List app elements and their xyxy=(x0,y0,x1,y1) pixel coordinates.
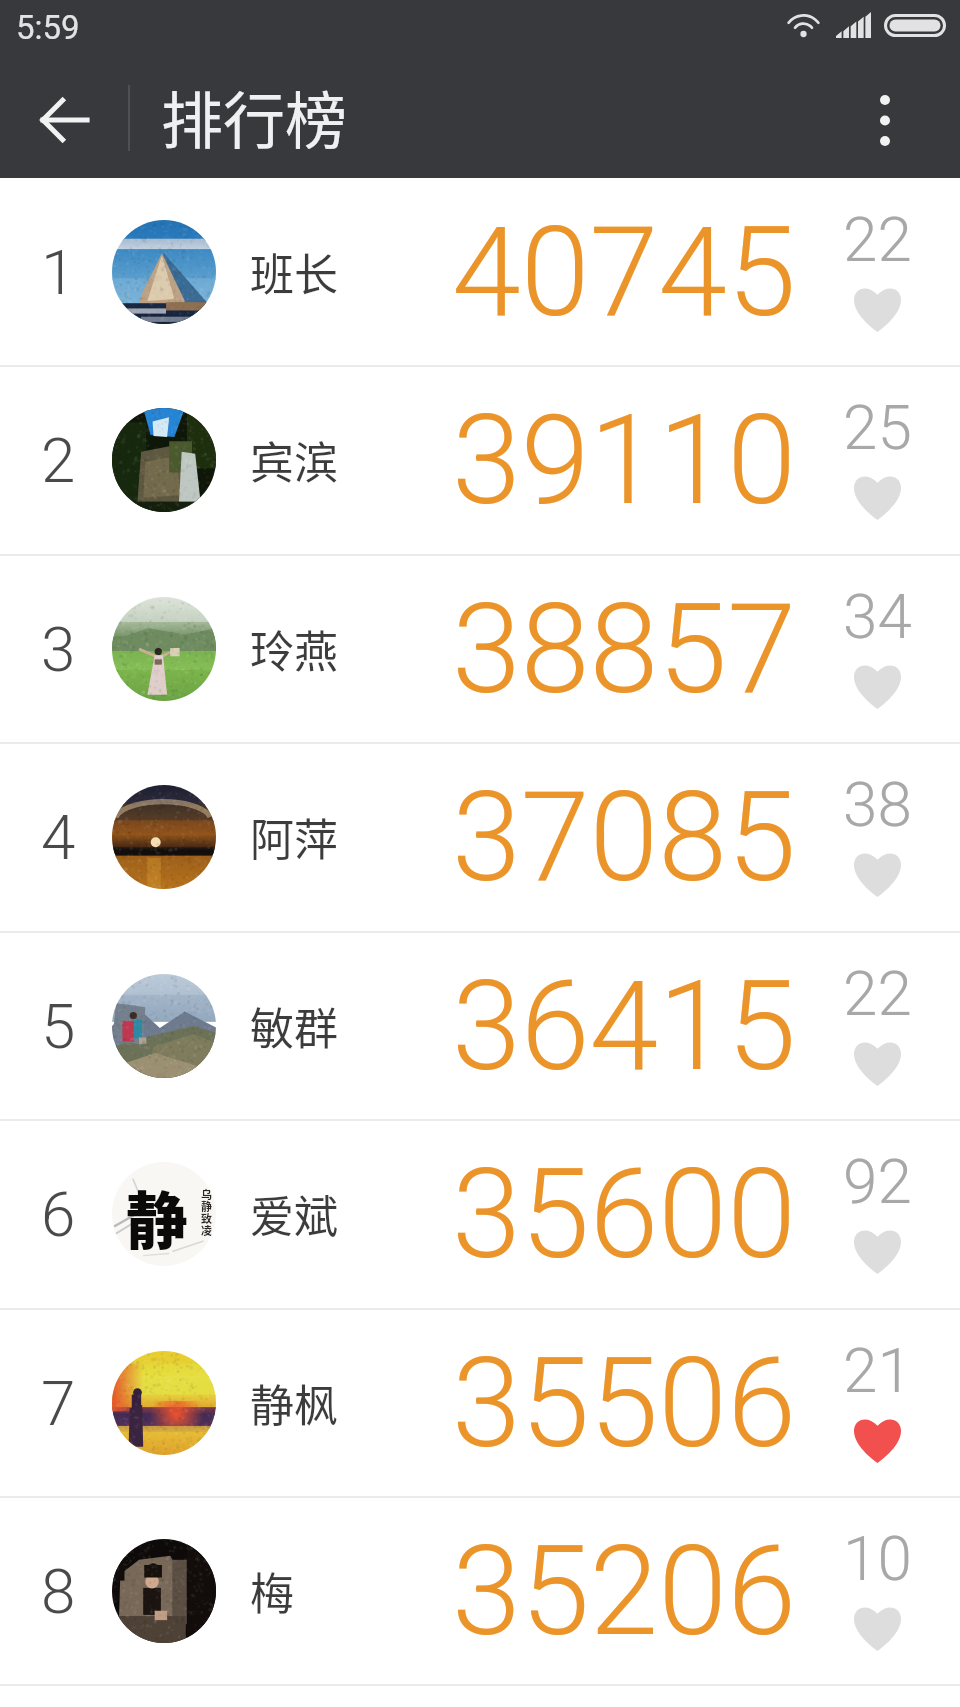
staticText: 35506 xyxy=(452,1331,796,1476)
button[interactable]: 8 xyxy=(0,1497,960,1685)
staticText: 37085 xyxy=(452,765,796,910)
staticText: 阿萍 xyxy=(250,805,338,869)
button[interactable]: Like xyxy=(815,1115,939,1303)
staticText: 2 xyxy=(41,424,76,497)
staticText: 4 xyxy=(41,801,76,874)
staticText: 5 xyxy=(41,990,76,1063)
button[interactable]: Like xyxy=(815,1492,939,1680)
button[interactable]: 5 xyxy=(0,932,960,1120)
staticText: 36415 xyxy=(452,954,796,1099)
staticText: 38857 xyxy=(452,577,796,722)
button[interactable]: Like xyxy=(815,927,939,1115)
staticText: 爱斌 xyxy=(250,1182,338,1246)
staticText: 92 xyxy=(843,1145,912,1218)
staticText: 7 xyxy=(41,1367,76,1440)
button[interactable]: Like xyxy=(815,361,939,549)
staticText: 25 xyxy=(843,391,912,464)
staticText: 梅 xyxy=(250,1559,294,1623)
button[interactable]: 2 xyxy=(0,366,960,554)
staticText: 22 xyxy=(843,957,912,1030)
button[interactable]: Like xyxy=(815,1304,939,1492)
staticText: 班长 xyxy=(250,240,338,304)
button[interactable]: Like xyxy=(815,550,939,738)
staticText: 排行榜 xyxy=(161,72,348,162)
staticText: 3 xyxy=(41,613,76,686)
staticText: 静枫 xyxy=(250,1371,338,1435)
button[interactable]: 3 xyxy=(0,555,960,743)
staticText: 5:59 xyxy=(16,8,80,47)
button[interactable]: Like xyxy=(815,738,939,926)
staticText: 21 xyxy=(843,1334,912,1407)
staticText: 玲燕 xyxy=(250,617,338,681)
button[interactable]: 7 xyxy=(0,1309,960,1497)
staticText: 敏群 xyxy=(250,994,338,1058)
staticText: 乌 静 致 凌 xyxy=(201,1186,212,1238)
button[interactable]: 1 xyxy=(0,178,960,366)
button[interactable]: 4 xyxy=(0,743,960,931)
staticText: 40745 xyxy=(452,200,796,345)
button[interactable]: Like xyxy=(815,173,939,361)
button[interactable]: 6 xyxy=(0,1120,960,1308)
button[interactable]: More options xyxy=(840,75,930,165)
staticText: 1 xyxy=(41,236,76,309)
button[interactable]: Back xyxy=(20,75,110,165)
staticText: 35600 xyxy=(452,1142,796,1287)
staticText: 8 xyxy=(41,1555,76,1628)
staticText: 39110 xyxy=(452,388,796,533)
staticText: 22 xyxy=(843,203,912,276)
staticText: 10 xyxy=(843,1522,912,1595)
staticText: 34 xyxy=(843,580,912,653)
staticText: 6 xyxy=(41,1178,76,1251)
staticText: 35206 xyxy=(452,1519,796,1664)
staticText: 38 xyxy=(843,768,912,841)
staticText: 静 xyxy=(126,1172,189,1262)
staticText: 宾滨 xyxy=(250,428,338,492)
